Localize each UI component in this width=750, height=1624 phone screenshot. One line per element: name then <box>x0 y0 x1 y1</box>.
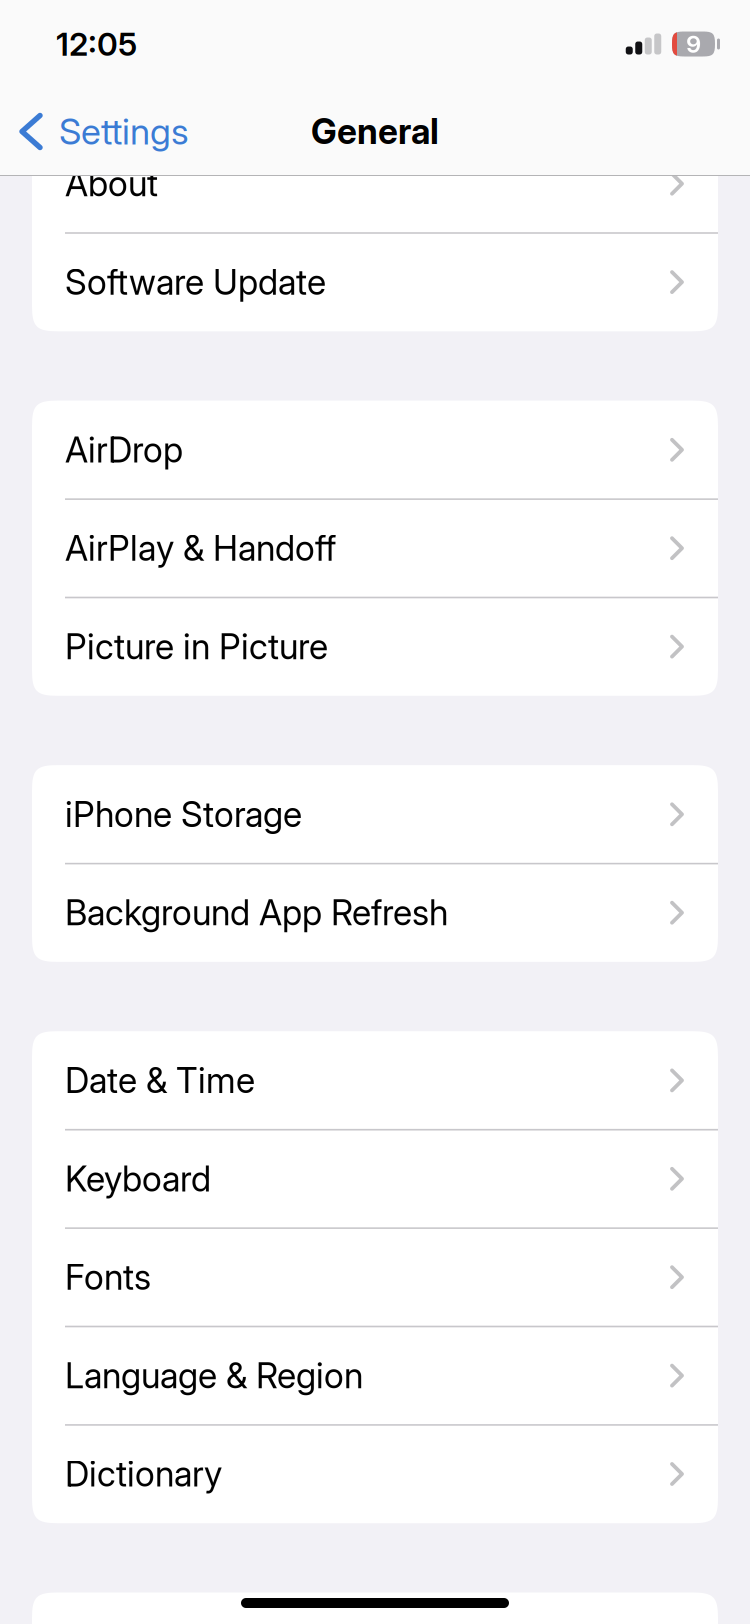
button[interactable]: Back to Settings <box>0 88 205 175</box>
staticText: 12:05 <box>56 25 137 63</box>
button[interactable]: VPN & Device Management <box>32 1592 718 1624</box>
staticText: AirDrop <box>65 429 183 471</box>
staticText: Software Update <box>65 261 326 303</box>
button[interactable]: Language & Region <box>32 1326 718 1425</box>
staticText: iPhone Storage <box>65 793 302 835</box>
button[interactable]: Fonts <box>32 1228 718 1326</box>
staticText: General <box>311 110 439 152</box>
button[interactable]: Picture in Picture <box>32 597 718 696</box>
staticText: AirPlay & Handoff <box>65 527 336 569</box>
button[interactable]: AirDrop <box>32 401 718 499</box>
button[interactable]: Software Update <box>32 233 718 331</box>
button[interactable]: Background App Refresh <box>32 863 718 962</box>
staticText: About <box>65 163 158 205</box>
button[interactable]: AirPlay & Handoff <box>32 499 718 597</box>
button[interactable]: Date & Time <box>32 1031 718 1130</box>
staticText: Settings <box>59 110 189 153</box>
staticText: Keyboard <box>65 1158 211 1200</box>
staticText: Date & Time <box>65 1059 255 1101</box>
staticText: 9 <box>686 29 701 58</box>
staticText: Background App Refresh <box>65 892 448 934</box>
button[interactable]: Dictionary <box>32 1425 718 1523</box>
staticText: Language & Region <box>65 1355 363 1396</box>
staticText: Dictionary <box>65 1453 222 1495</box>
button[interactable]: Keyboard <box>32 1130 718 1228</box>
staticText: Fonts <box>65 1256 151 1298</box>
staticText: Picture in Picture <box>65 626 328 667</box>
button[interactable]: About <box>32 134 718 233</box>
button[interactable]: iPhone Storage <box>32 765 718 863</box>
